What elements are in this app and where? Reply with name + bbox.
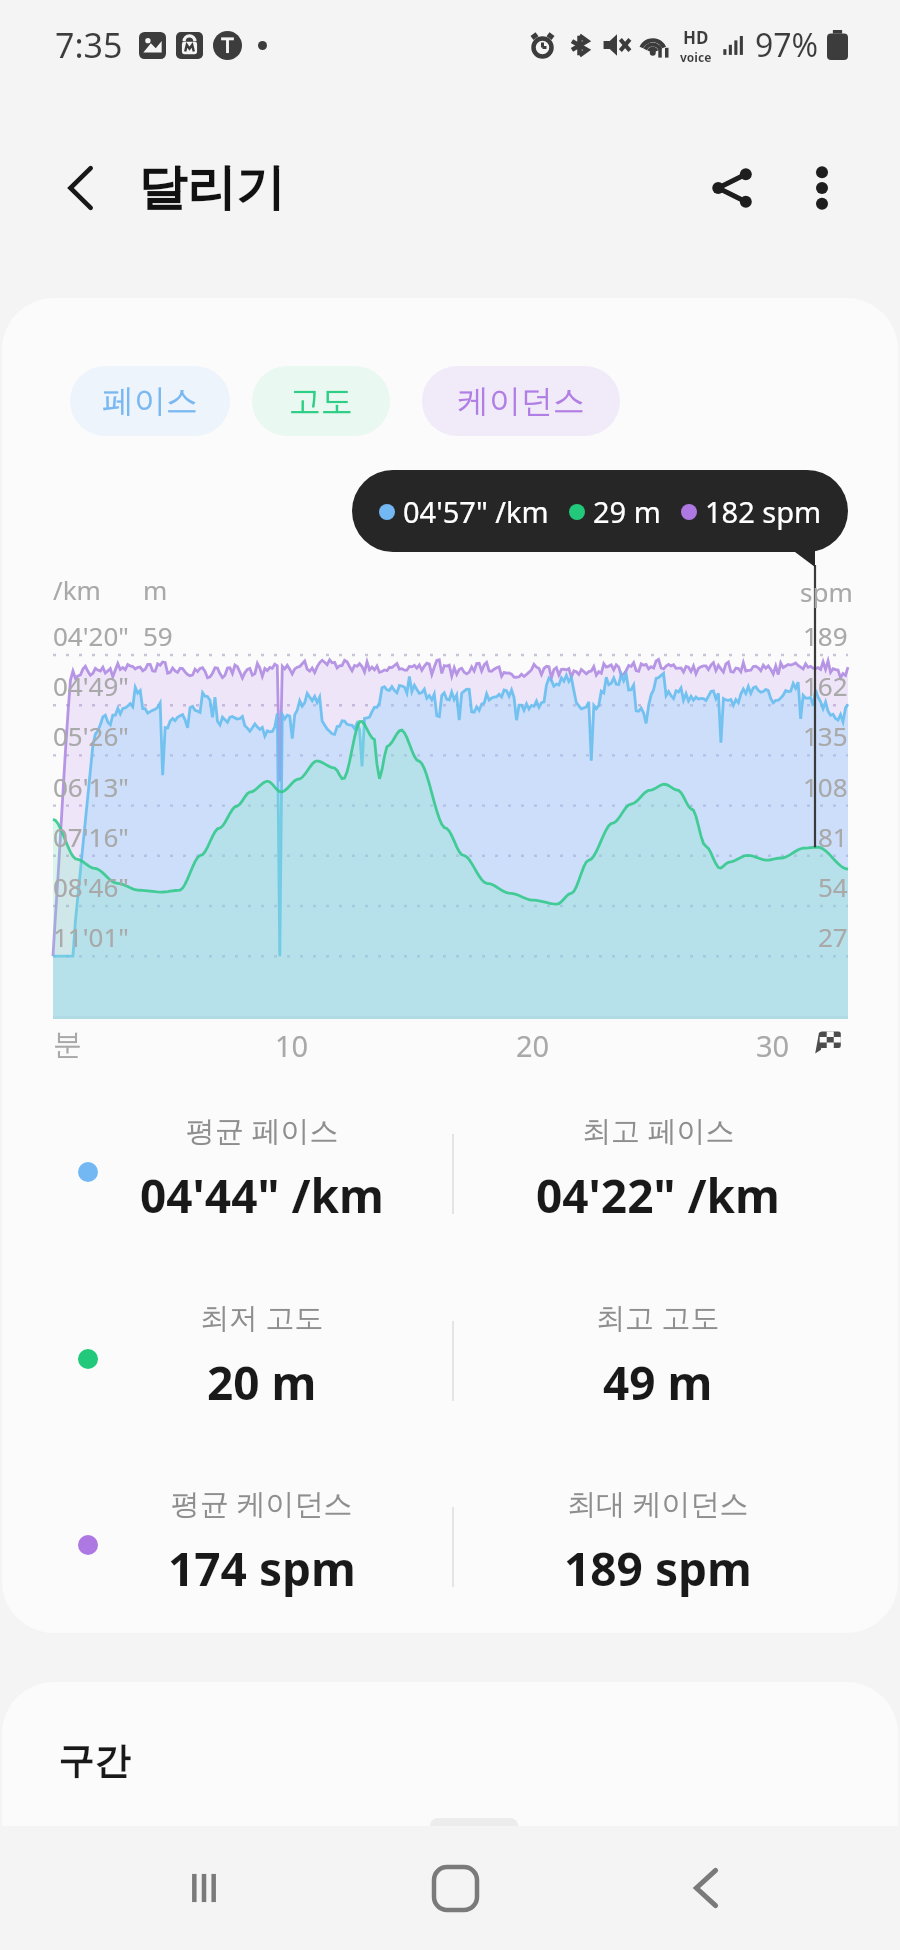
staticText: 29 m — [593, 492, 661, 531]
staticText: m — [143, 572, 168, 607]
staticText: 평균 페이스 — [186, 1110, 339, 1150]
button[interactable]: Home — [409, 1842, 501, 1934]
button[interactable]: More options — [778, 144, 866, 232]
staticText: 04'57" /km — [403, 492, 549, 531]
staticText: 59 — [143, 618, 173, 653]
button[interactable]: 케이던스 — [422, 366, 620, 436]
button[interactable]: 페이스 — [70, 366, 230, 436]
staticText: 11'01" — [53, 919, 129, 954]
staticText: 27 — [818, 919, 848, 954]
staticText: 7:35 — [55, 22, 123, 68]
staticText: /km — [53, 572, 101, 607]
staticText: 고도 — [289, 381, 353, 421]
staticText: 페이스 — [102, 381, 198, 421]
staticText: spm — [800, 574, 853, 609]
staticText: 05'26" — [53, 718, 129, 753]
staticText: 구간 — [58, 1738, 130, 1783]
staticText: 20 — [516, 1026, 550, 1065]
staticText: 04'44" /km — [140, 1164, 384, 1227]
button[interactable]: Back — [40, 147, 122, 229]
button[interactable]: 고도 — [252, 366, 390, 436]
button[interactable]: Recents — [158, 1842, 250, 1934]
staticText: 평균 케이던스 — [171, 1483, 353, 1523]
staticText: 135 — [803, 718, 848, 753]
staticText: 108 — [803, 769, 848, 804]
staticText: 최고 페이스 — [582, 1110, 735, 1150]
staticText: 최저 고도 — [200, 1297, 324, 1337]
staticText: 분 — [53, 1026, 82, 1063]
staticText: voice — [680, 49, 712, 65]
staticText: 20 m — [207, 1351, 317, 1414]
staticText: 81 — [818, 819, 848, 854]
staticText: 49 m — [603, 1351, 713, 1414]
staticText: 04'20" — [53, 618, 129, 653]
staticText: 07'16" — [53, 819, 129, 854]
staticText: 10 — [275, 1026, 309, 1065]
staticText: 189 spm — [564, 1537, 752, 1600]
staticText: 최고 고도 — [596, 1297, 720, 1337]
button[interactable]: Back — [660, 1842, 752, 1934]
staticText: 182 spm — [705, 492, 822, 531]
staticText: 06'13" — [53, 769, 129, 804]
staticText: 189 — [803, 618, 848, 653]
staticText: 30 — [756, 1026, 790, 1065]
staticText: 달리기 — [138, 157, 285, 219]
staticText: 162 — [803, 668, 848, 703]
staticText: 174 spm — [168, 1537, 356, 1600]
staticText: 54 — [818, 869, 848, 904]
staticText: 케이던스 — [457, 381, 585, 421]
staticText: 97% — [755, 23, 819, 67]
staticText: 04'22" /km — [536, 1164, 780, 1227]
button[interactable]: Share — [688, 144, 776, 232]
staticText: 08'46" — [53, 869, 129, 904]
staticText: HD — [683, 26, 709, 49]
staticText: 04'49" — [53, 668, 129, 703]
staticText: 최대 케이던스 — [567, 1483, 749, 1523]
